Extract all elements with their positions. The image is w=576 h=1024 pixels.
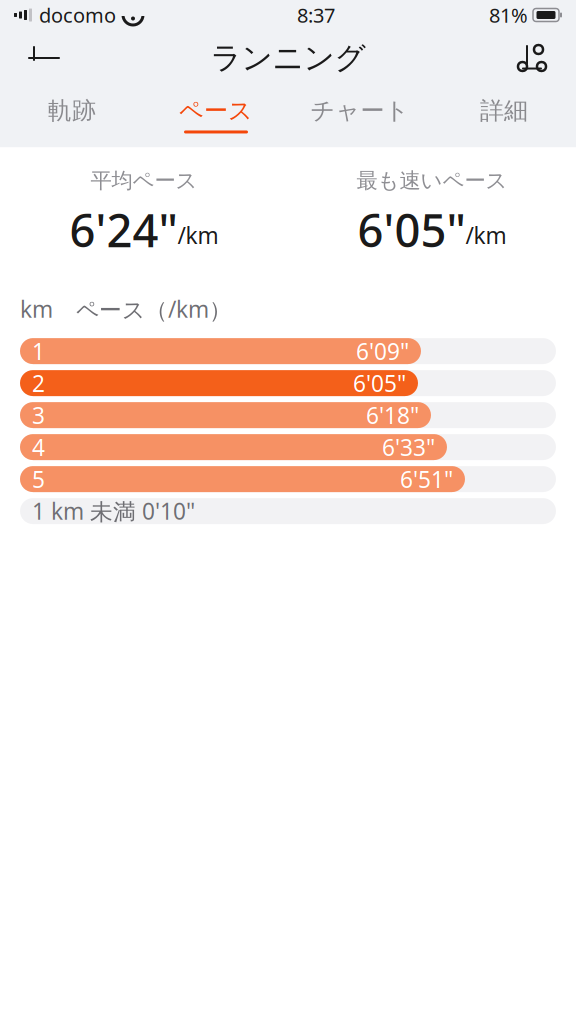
- staticText: km ペース（/km）: [20, 294, 232, 324]
- button[interactable]: ペース: [144, 90, 288, 139]
- staticText: 軌跡: [48, 96, 96, 125]
- staticText: 6'09": [356, 336, 409, 366]
- button[interactable]: Share: [502, 33, 562, 83]
- staticText: 6'33": [382, 432, 435, 462]
- staticText: /km: [177, 220, 218, 250]
- button[interactable]: Back: [14, 33, 74, 83]
- staticText: 6'18": [366, 400, 419, 430]
- staticText: 5: [32, 464, 45, 494]
- staticText: 最も速いペース: [356, 167, 507, 194]
- staticText: 6'24": [69, 200, 177, 260]
- staticText: 3: [32, 400, 45, 430]
- staticText: 2: [32, 368, 45, 398]
- staticText: /km: [465, 220, 506, 250]
- staticText: 平均ペース: [90, 167, 197, 194]
- staticText: 詳細: [480, 96, 528, 125]
- staticText: ペース: [179, 96, 253, 125]
- staticText: docomo: [39, 2, 116, 28]
- staticText: チャート: [310, 96, 409, 125]
- staticText: 6'51": [400, 464, 453, 494]
- staticText: ランニング: [210, 39, 365, 77]
- staticText: 1: [32, 336, 45, 366]
- staticText: 8:37: [297, 2, 335, 28]
- staticText: 81%: [489, 2, 528, 28]
- button[interactable]: チャート: [288, 90, 432, 139]
- button[interactable]: 軌跡: [0, 90, 144, 139]
- staticText: 1 km 未満 0'10": [32, 496, 195, 526]
- staticText: 6'05": [357, 200, 465, 260]
- button[interactable]: 詳細: [432, 90, 576, 139]
- staticText: 6'05": [353, 368, 406, 398]
- staticText: 4: [32, 432, 45, 462]
